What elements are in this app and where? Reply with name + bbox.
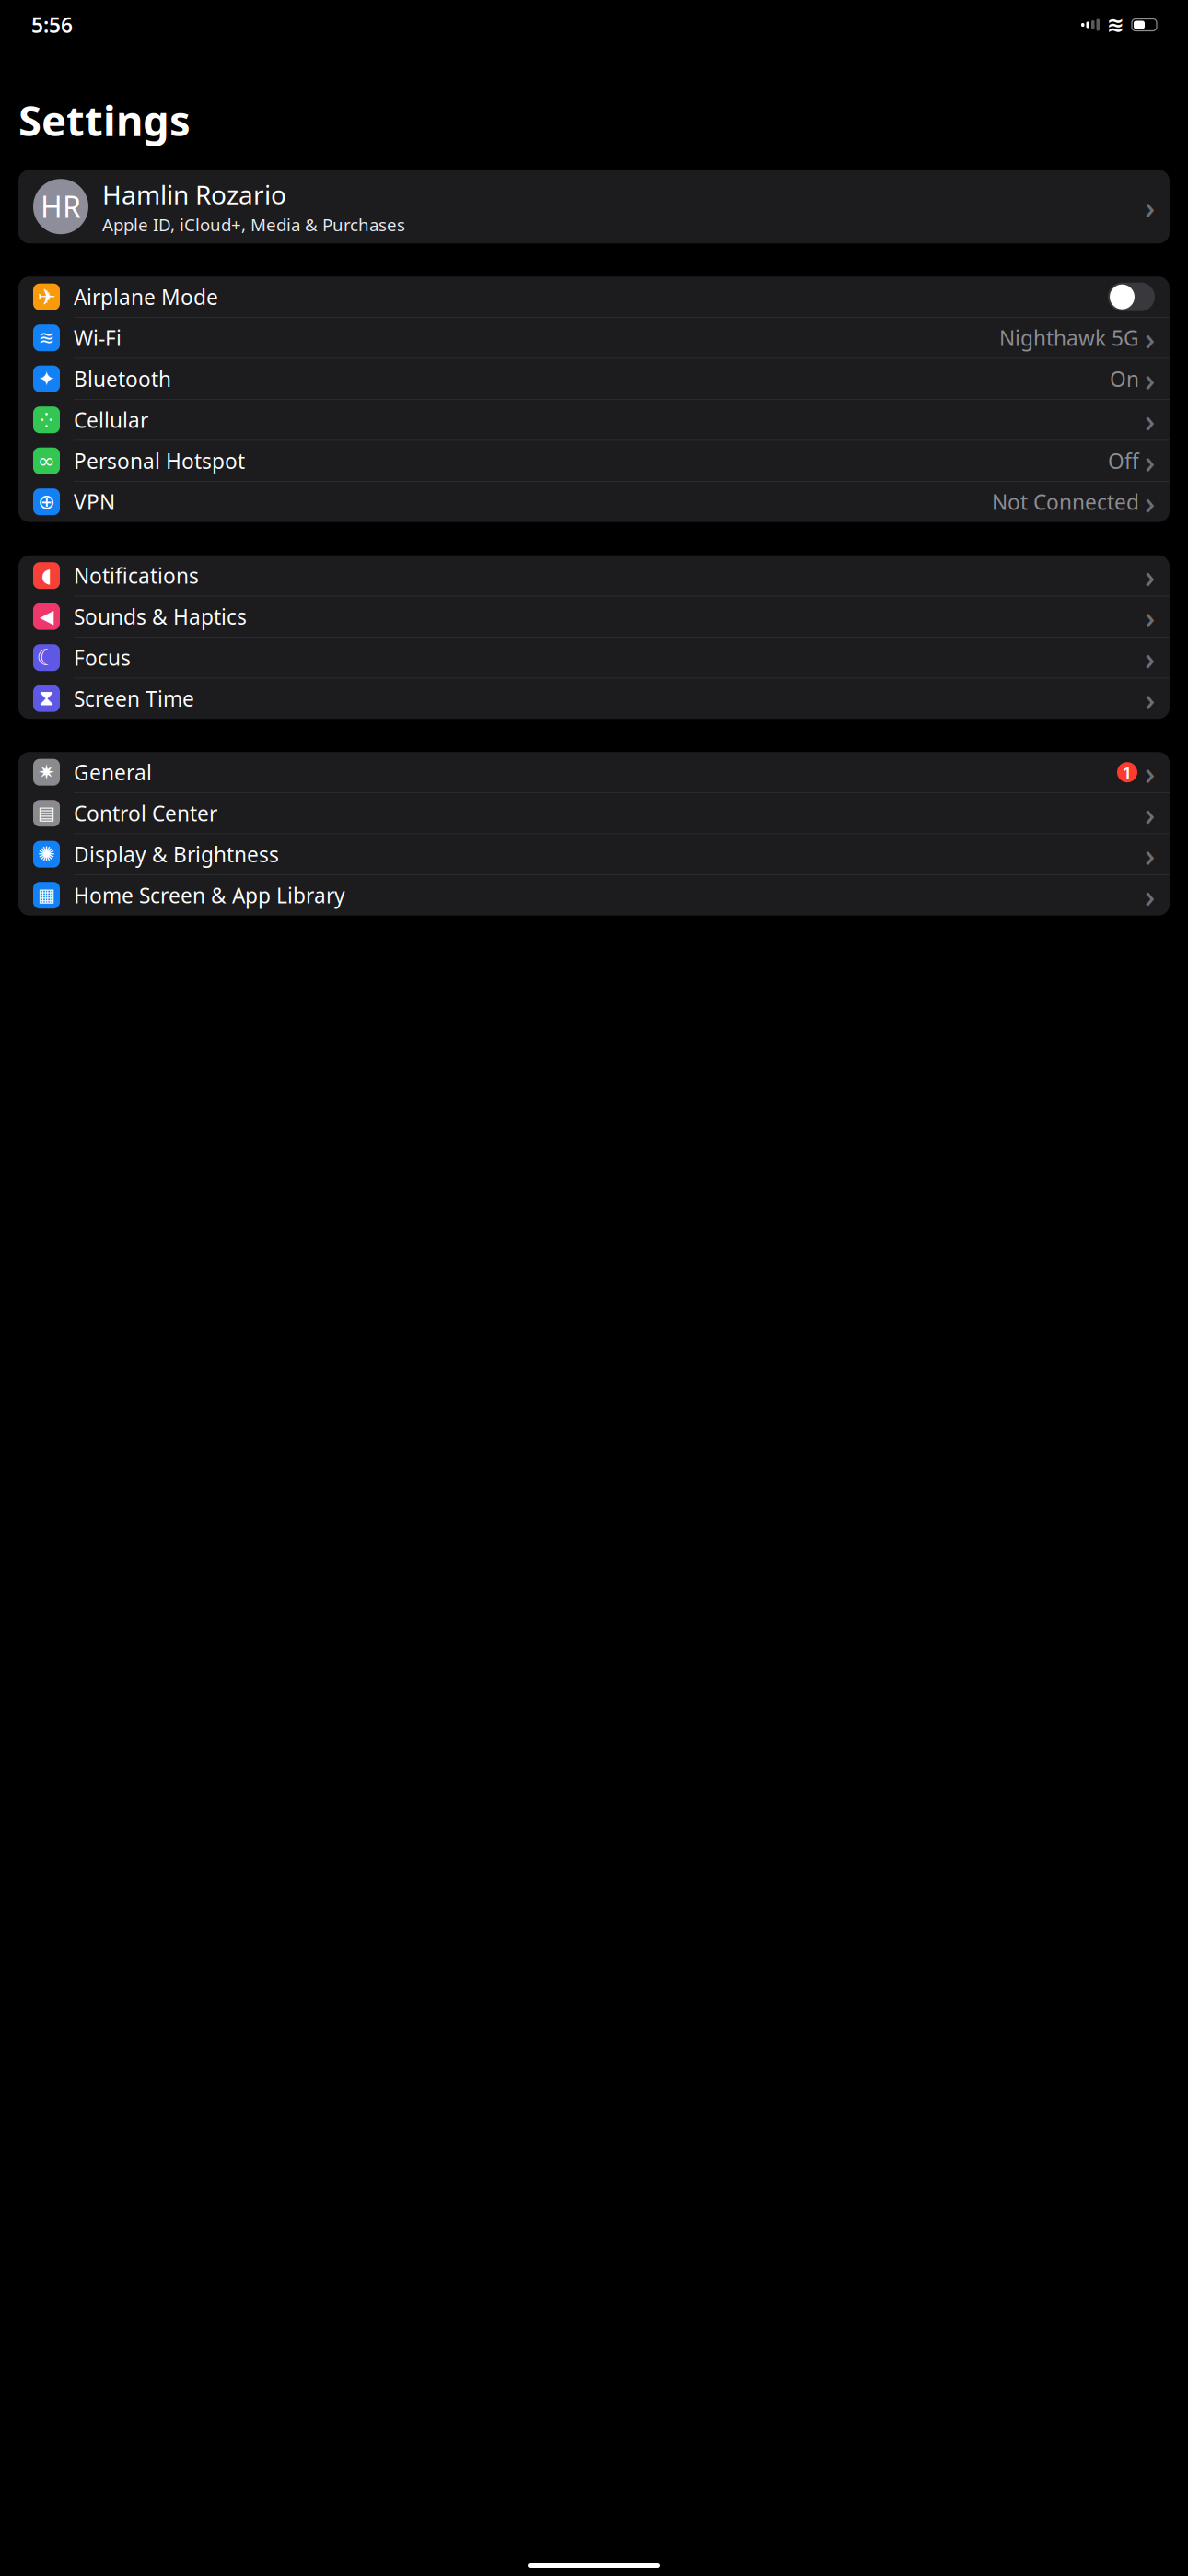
staticText: ◀: [40, 606, 53, 627]
staticText: ›: [1145, 440, 1155, 482]
staticText: ›: [1145, 554, 1155, 597]
staticText: ›: [1145, 792, 1155, 834]
staticText: General: [74, 758, 152, 786]
staticText: Settings: [18, 92, 191, 148]
staticText: Sounds & Haptics: [74, 603, 247, 630]
staticText: On: [1110, 365, 1139, 393]
button[interactable]: ◀: [18, 596, 1170, 637]
staticText: ▦: [38, 885, 55, 906]
staticText: Notifications: [74, 562, 199, 589]
staticText: ›: [1145, 358, 1155, 400]
staticText: Bluetooth: [74, 365, 171, 393]
staticText: 5:56: [31, 11, 73, 39]
staticText: ›: [1145, 677, 1155, 720]
staticText: VPN: [74, 488, 115, 516]
button[interactable]: ▤: [18, 793, 1170, 834]
staticText: HR: [41, 187, 81, 226]
button[interactable]: HR: [0, 170, 1188, 243]
staticText: ›: [1145, 595, 1155, 638]
staticText: Screen Time: [74, 685, 194, 712]
staticText: ›: [1145, 751, 1155, 793]
staticText: Hamlin Rozario: [102, 177, 286, 211]
staticText: ›: [1145, 317, 1155, 359]
staticText: Personal Hotspot: [74, 447, 245, 475]
staticText: Off: [1108, 447, 1139, 475]
staticText: Not Connected: [992, 488, 1139, 516]
staticText: ›: [1145, 481, 1155, 523]
staticText: ⧗: [39, 688, 54, 709]
staticText: Control Center: [74, 799, 217, 827]
staticText: Airplane Mode: [74, 283, 218, 311]
staticText: Home Screen & App Library: [74, 881, 345, 909]
button[interactable]: ◖: [18, 555, 1170, 596]
staticText: Cellular: [74, 406, 148, 434]
staticText: ≋: [1107, 13, 1124, 37]
staticText: ›: [1145, 399, 1155, 441]
staticText: ✺: [38, 842, 55, 866]
staticText: Display & Brightness: [74, 840, 279, 868]
staticText: ⁛: [40, 407, 53, 433]
button[interactable]: ∞: [18, 441, 1170, 481]
button[interactable]: ✈: [18, 277, 1170, 317]
staticText: ✷: [38, 760, 55, 784]
staticText: ›: [1145, 833, 1155, 875]
staticText: ✦: [38, 367, 55, 391]
button[interactable]: ⊕: [18, 482, 1170, 522]
button[interactable]: ⧗: [18, 678, 1170, 719]
button[interactable]: ⁛: [18, 400, 1170, 440]
staticText: ∞: [38, 449, 55, 473]
staticText: ✈: [37, 284, 56, 309]
staticText: Apple ID, iCloud+, Media & Purchases: [102, 213, 405, 236]
staticText: ⊕: [38, 490, 55, 514]
staticText: ›: [1145, 874, 1155, 916]
button[interactable]: ✺: [18, 834, 1170, 875]
button[interactable]: ✷: [18, 752, 1170, 793]
button[interactable]: ▦: [18, 875, 1170, 916]
staticText: Nighthawk 5G: [999, 324, 1139, 352]
staticText: Wi-Fi: [74, 324, 122, 352]
staticText: 1: [1122, 761, 1132, 784]
staticText: ☾: [36, 645, 57, 670]
staticText: ≋: [38, 327, 55, 349]
button[interactable]: ≋: [18, 318, 1170, 358]
staticText: ◖: [41, 564, 52, 587]
staticText: ▤: [38, 803, 55, 824]
button[interactable]: ✦: [18, 359, 1170, 399]
staticText: ›: [1145, 185, 1155, 228]
staticText: ›: [1145, 636, 1155, 679]
staticText: Focus: [74, 644, 131, 671]
button[interactable]: ☾: [18, 637, 1170, 678]
